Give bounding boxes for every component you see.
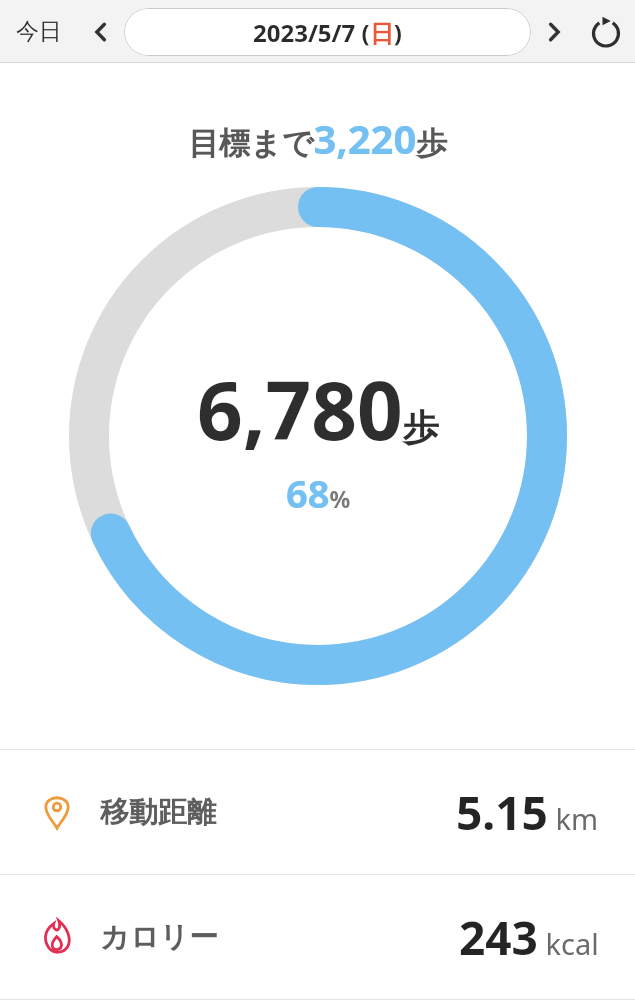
button[interactable]: Previous day	[78, 9, 124, 55]
staticText: 5.15 km	[456, 781, 599, 844]
staticText: 移動距離	[100, 794, 216, 831]
staticText: 68%	[286, 467, 351, 519]
button[interactable]: 今日	[0, 7, 78, 56]
button[interactable]: カロリー	[0, 875, 635, 999]
staticText: 目標まで3,220歩	[188, 111, 448, 165]
staticText: カロリー	[100, 919, 219, 956]
staticText: 2023/5/7 (日)	[253, 16, 402, 49]
staticText: 243 kcal	[459, 906, 599, 969]
button[interactable]: Refresh	[577, 3, 635, 61]
staticText: 6,780歩	[197, 354, 439, 463]
button[interactable]: 移動距離	[0, 750, 635, 874]
staticText: 今日	[16, 17, 62, 46]
button[interactable]: Next day	[531, 9, 577, 55]
button[interactable]: 2023/5/7 (日)	[124, 8, 531, 56]
